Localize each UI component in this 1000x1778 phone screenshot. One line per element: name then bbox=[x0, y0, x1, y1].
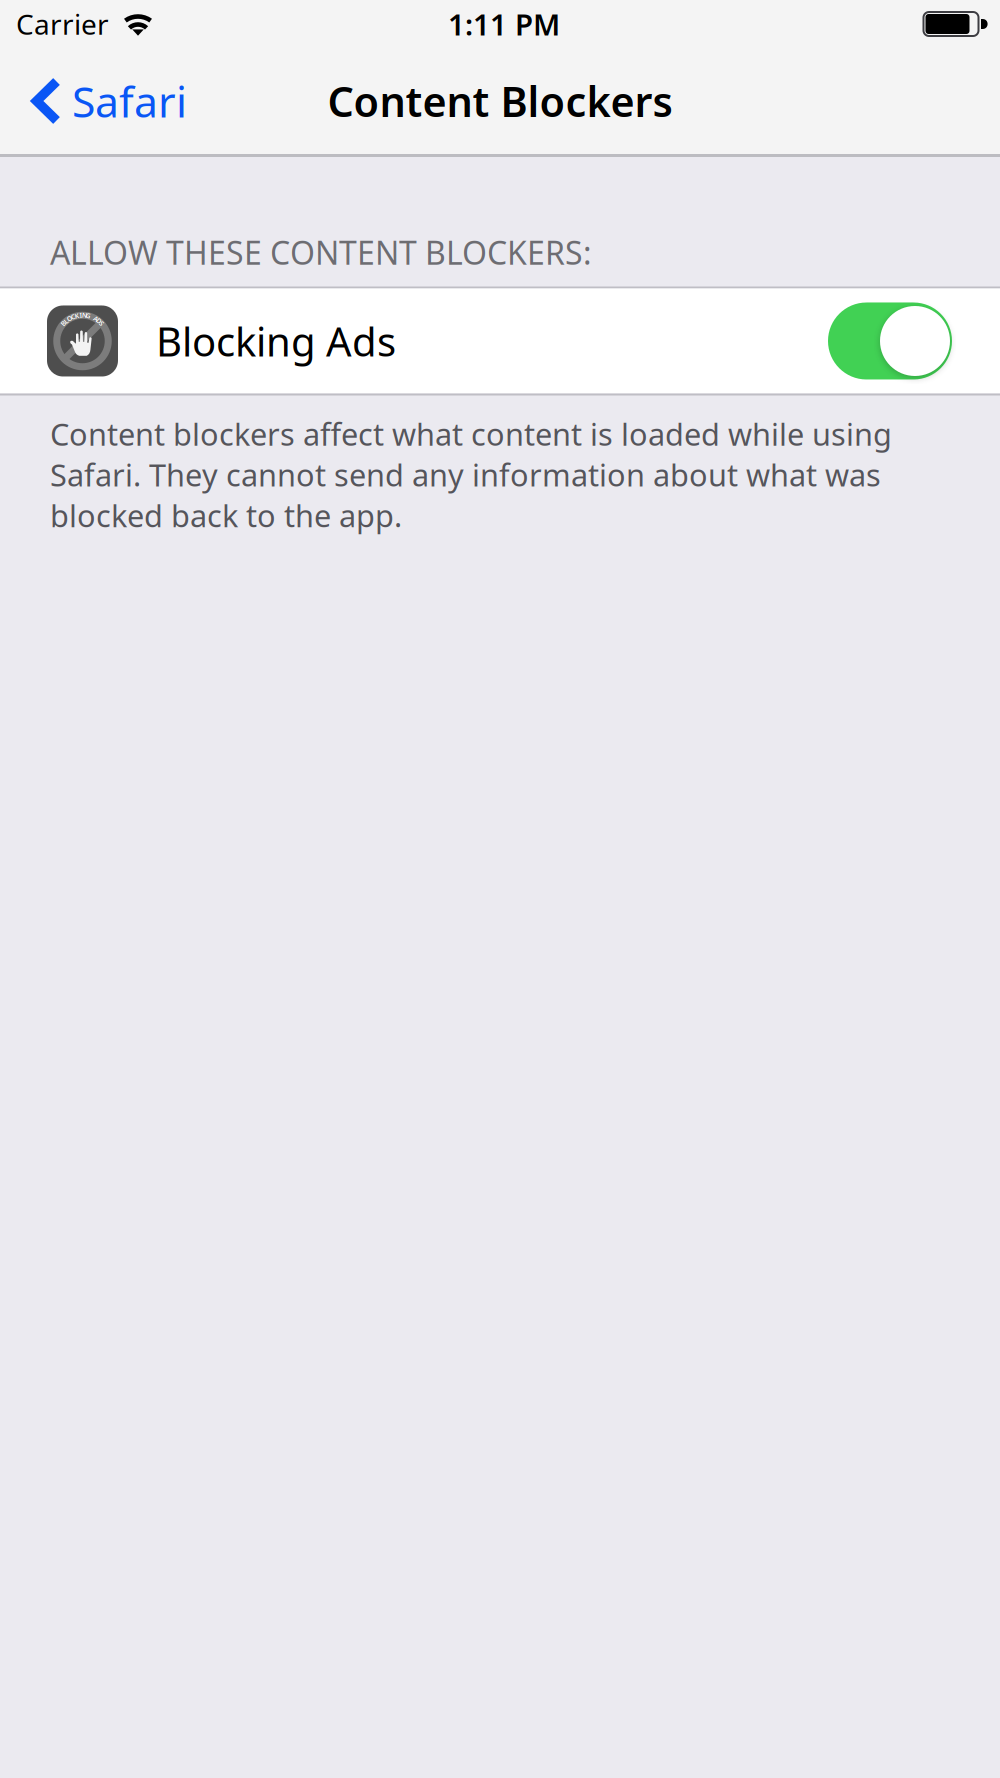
button[interactable]: B bbox=[0, 288, 1000, 393]
staticText: Content blockers affect what content is … bbox=[50, 413, 892, 536]
staticText: ALLOW THESE CONTENT BLOCKERS: bbox=[50, 231, 592, 273]
staticText: 1:11 PM bbox=[448, 4, 560, 43]
staticText: D bbox=[96, 316, 101, 325]
staticText: B bbox=[61, 319, 65, 328]
staticText: Blocking Ads bbox=[156, 314, 396, 367]
staticText: G bbox=[86, 311, 91, 320]
staticText: C bbox=[71, 312, 75, 321]
button[interactable]: Blocking Ads, on bbox=[828, 302, 952, 379]
staticText: I bbox=[79, 311, 81, 319]
staticText: K bbox=[75, 311, 79, 320]
staticText: Safari bbox=[72, 73, 187, 129]
button[interactable]: Back to Safari bbox=[0, 58, 211, 144]
staticText: S bbox=[100, 319, 104, 328]
staticText: Carrier bbox=[16, 5, 109, 43]
staticText: O bbox=[67, 314, 72, 323]
staticText: N bbox=[82, 311, 87, 319]
staticText: A bbox=[94, 314, 98, 323]
staticText bbox=[91, 312, 93, 321]
staticText: L bbox=[64, 316, 68, 325]
staticText: Content Blockers bbox=[327, 74, 672, 128]
